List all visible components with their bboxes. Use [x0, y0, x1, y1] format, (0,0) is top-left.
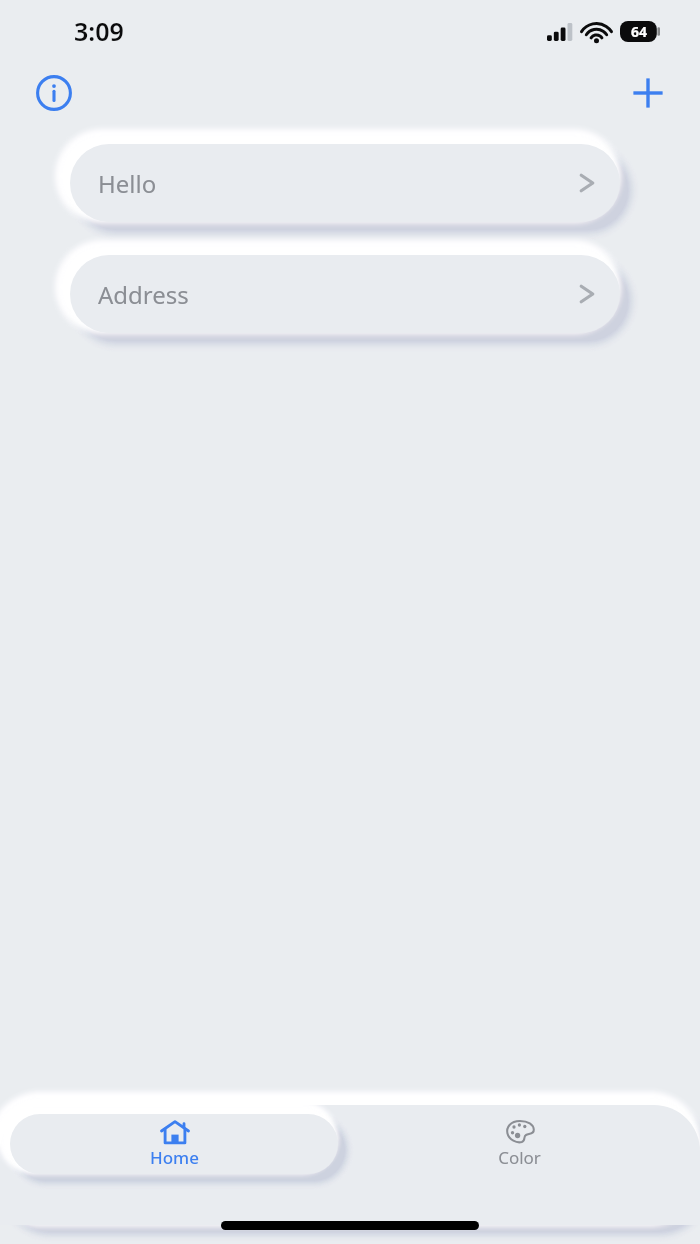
staticText: Address	[98, 278, 189, 311]
staticText: Color	[498, 1146, 541, 1169]
staticText: Home	[150, 1146, 199, 1169]
button[interactable]: Add	[620, 65, 676, 121]
button[interactable]: Hello	[70, 144, 620, 222]
button[interactable]: Color	[338, 1114, 700, 1174]
button[interactable]: Info	[26, 65, 82, 121]
button[interactable]: Address	[70, 255, 620, 333]
staticText: 3:09	[74, 14, 124, 48]
staticText: Hello	[98, 167, 157, 200]
staticText: 64	[631, 22, 648, 41]
button[interactable]: Home	[10, 1114, 338, 1174]
